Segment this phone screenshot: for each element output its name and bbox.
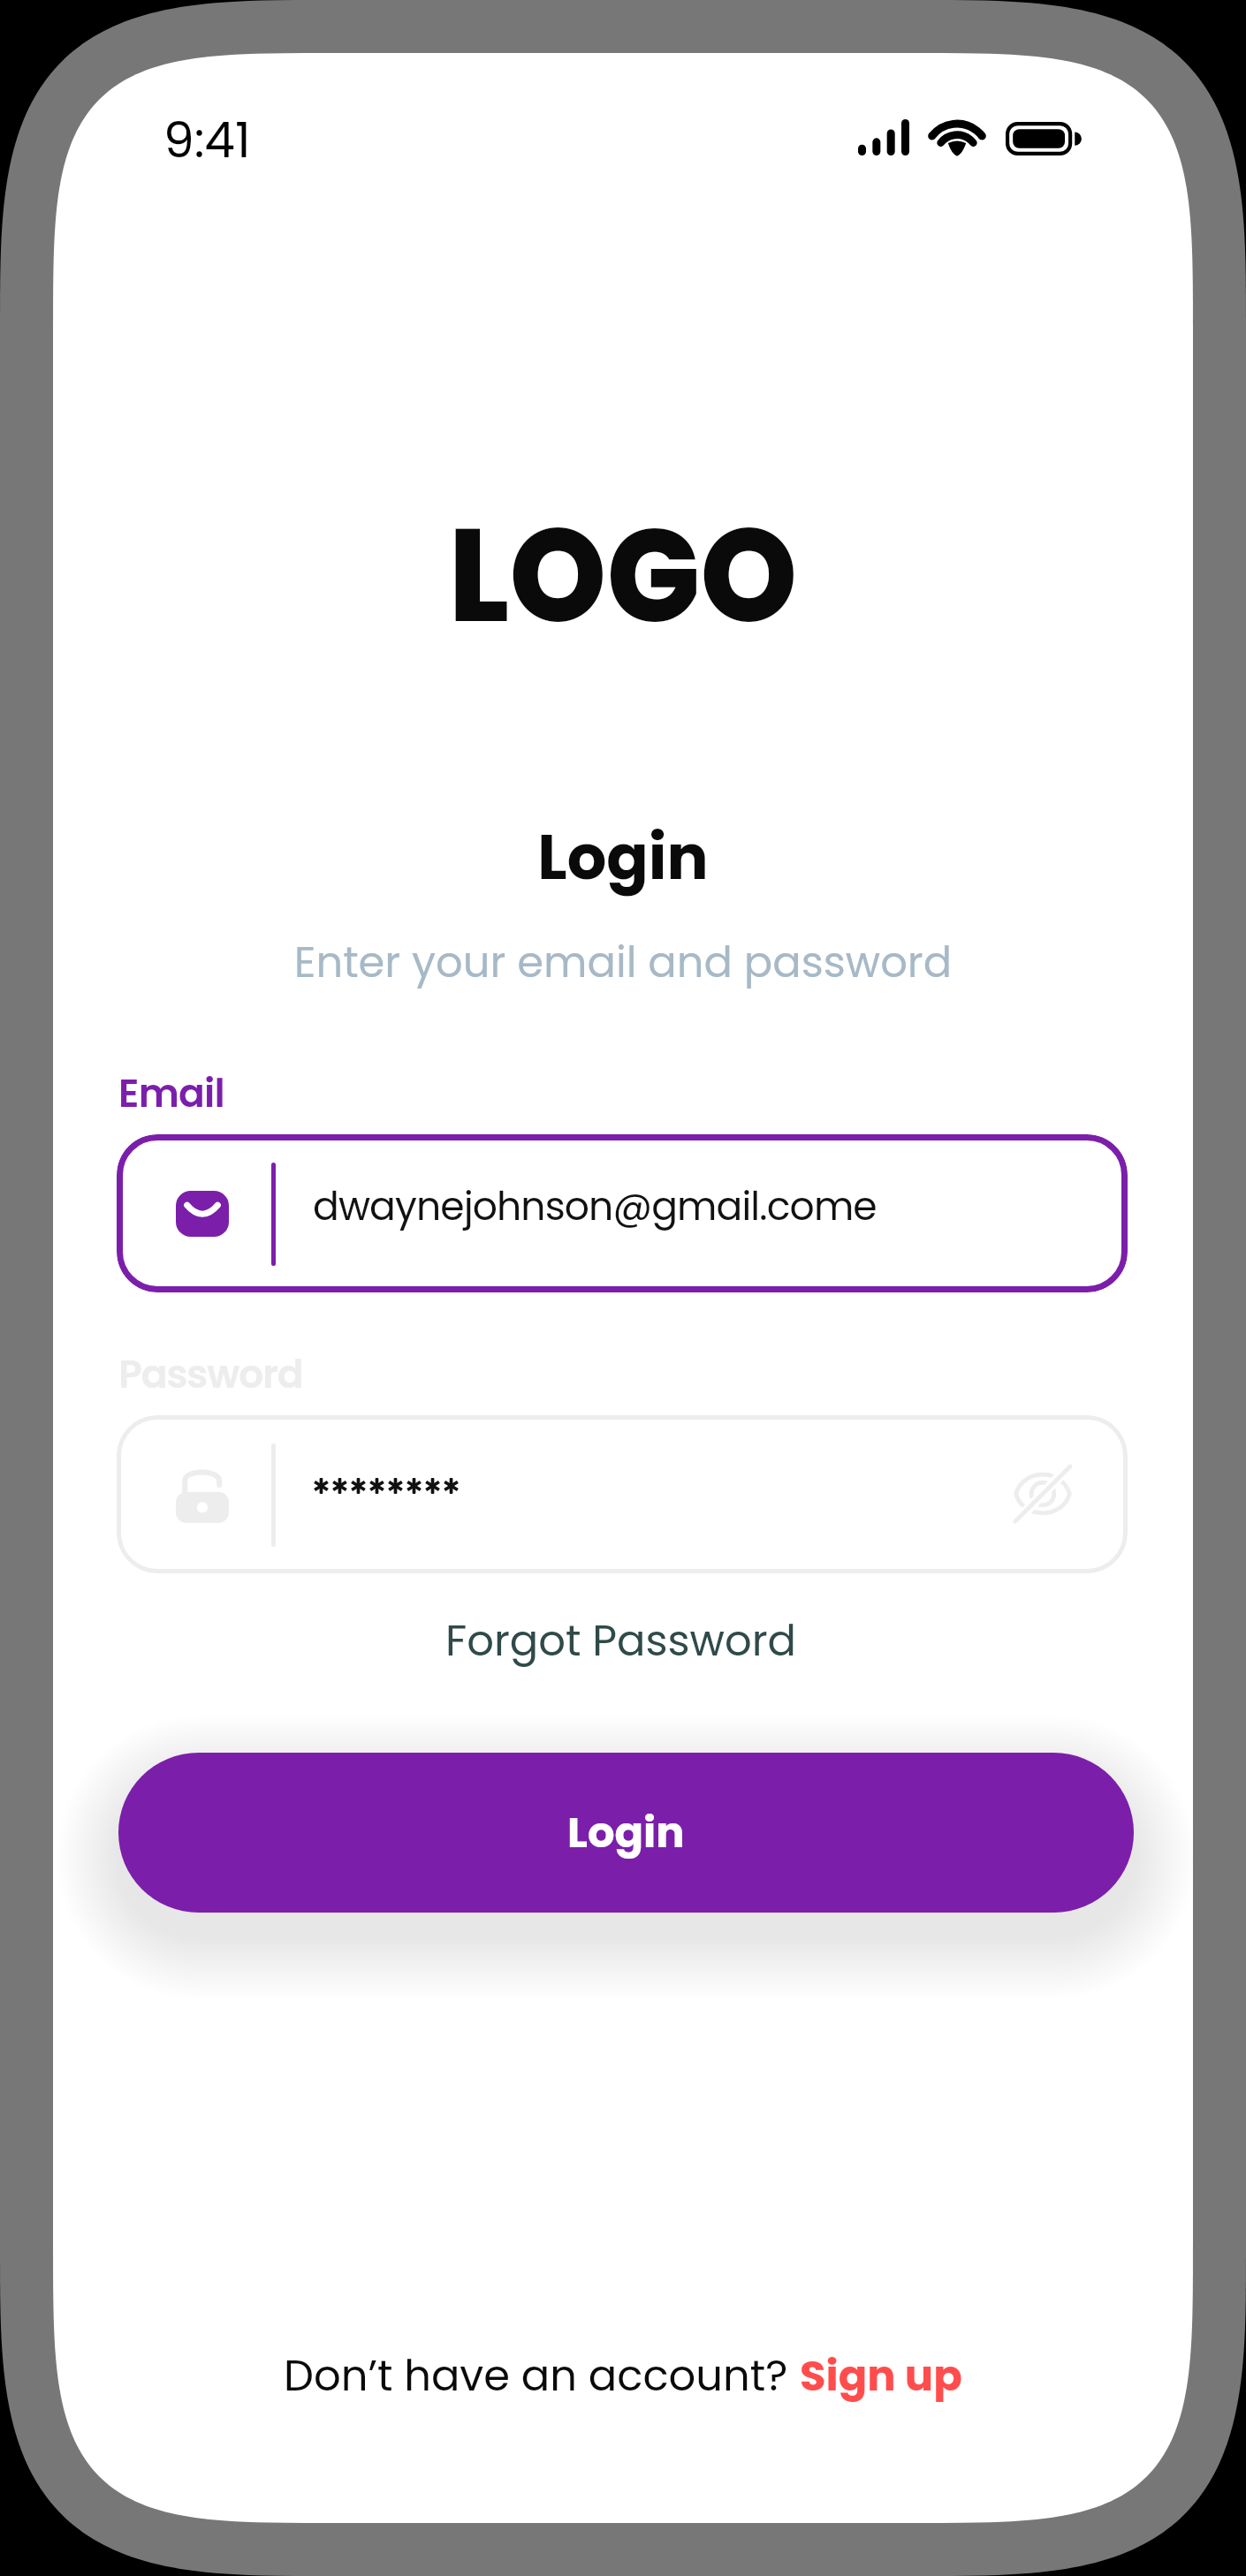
staticText: LOGO [84,484,1162,667]
staticText: 9:41 [163,106,251,174]
button[interactable]: dwaynejohnson@gmail.come [117,1134,1128,1292]
staticText: Sign up [800,2346,962,2406]
staticText: Enter your email and password [53,933,1193,992]
button[interactable]: Login [118,1753,1134,1913]
staticText: Login [53,814,1193,900]
staticText: Password [118,1347,303,1402]
staticText: Email [118,1066,225,1121]
button[interactable]: Sign up [800,2346,962,2406]
button[interactable]: Show password [117,1415,1128,1573]
button[interactable]: Forgot Password [382,1594,861,1687]
staticText: Login [567,1803,685,1862]
button[interactable]: Show password [1014,1465,1072,1523]
staticText: Forgot Password [445,1611,797,1671]
staticText: Don’t have an account? [284,2346,800,2406]
staticText: dwaynejohnson@gmail.come [313,1179,877,1234]
